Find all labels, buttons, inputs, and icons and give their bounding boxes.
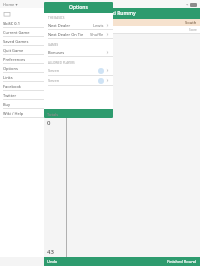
staticText: Totals [47,112,59,117]
staticText: Undo [47,259,58,264]
staticText: Shuffle [90,32,104,37]
staticText: 10 [63,34,67,38]
staticText: Seven [48,78,60,83]
button[interactable]: Wiki / Help [0,109,44,118]
button[interactable]: Seven [44,66,113,76]
staticText: Lewis [93,23,104,28]
staticText: Finished Round [167,259,197,264]
staticText: South [185,20,197,25]
staticText: Home ▾ [3,2,18,7]
staticText: Round 1 [48,34,60,38]
staticText: Knockdown [63,52,80,56]
staticText: Preferences [3,57,26,62]
staticText: Links [3,75,13,80]
staticText: Saved Games [3,39,29,44]
staticText: 1 [63,58,65,62]
staticText: Wiki / Help [3,111,24,116]
staticText: THE BASICS [48,16,65,20]
staticText: Quit Game [3,48,24,53]
staticText: Score [189,28,197,32]
button[interactable]: Bonuses [44,48,113,57]
button[interactable]: SkiSC 0.1 [0,19,44,28]
button[interactable]: Buy [0,100,44,109]
staticText: Next Dealer [48,23,71,28]
staticText: ALLOWED PLAYERS [48,61,75,65]
staticText: Buy [3,102,11,107]
staticText: Twitter [3,93,17,98]
button[interactable]: Twitter [0,91,44,100]
button[interactable]: Preferences [0,55,44,64]
button[interactable]: Next Dealer [44,21,113,30]
button[interactable]: Next Dealer On Tie [44,30,113,39]
staticText: 0 [47,119,51,127]
staticText: 43 [47,248,54,256]
button[interactable]: Options [0,64,44,73]
staticText: Bonuses [48,50,65,55]
staticText: GAMES [48,43,59,47]
staticText: Options [69,4,88,11]
staticText: Ski Rummy [109,10,136,17]
staticText: ⌁ [186,2,189,7]
button[interactable]: Links [0,73,44,82]
staticText: SkiSC 0.1 [3,21,20,26]
other: Stepper [98,68,104,74]
staticText: Current Game [3,30,30,35]
staticText: Options [3,66,18,71]
button[interactable]: Facebook [0,82,44,91]
button[interactable] [44,109,113,118]
button[interactable]: Saved Games [0,37,44,46]
button[interactable]: Quit Game [0,46,44,55]
button[interactable]: Seven [44,76,113,86]
staticText: Seven [48,68,60,73]
button[interactable]: Current Game [0,28,44,37]
other: Stepper [98,78,104,84]
staticText: Next Dealer On Tie [48,32,84,37]
staticText: Facebook [3,84,21,89]
